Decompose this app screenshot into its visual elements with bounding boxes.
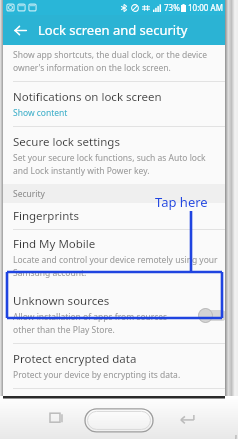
staticText: Allow installation of apps from sources: [13, 311, 168, 323]
staticText: Find My Mobile: [13, 236, 96, 252]
button[interactable]: Notifications on lock screen: [0, 82, 238, 126]
staticText: Protect your device by encrypting its da…: [13, 369, 181, 381]
button[interactable]: Fingerprints: [0, 203, 238, 229]
staticText: and Lock instantly with Power key.: [13, 165, 150, 177]
staticText: Tap here: [155, 193, 208, 211]
staticText: Lock screen and security: [38, 21, 188, 39]
staticText: Locate and control your device remotely …: [13, 254, 218, 266]
staticText: Set your secure lock functions, such as …: [13, 152, 206, 164]
button[interactable]: Secure lock settings: [0, 127, 238, 184]
button[interactable]: Unknown sources: [0, 285, 238, 343]
staticText: owner's information on the lock screen.: [13, 62, 171, 74]
button[interactable]: Find My Mobile: [0, 230, 238, 285]
staticText: Fingerprints: [13, 208, 79, 224]
staticText: Notifications on lock screen: [13, 89, 162, 105]
staticText: Unknown sources: [13, 293, 110, 309]
button[interactable]: Other security settings: [0, 389, 238, 396]
button[interactable]: Show app shortcuts, the dual clock, or t…: [0, 45, 238, 81]
staticText: 10:00 AM: [188, 2, 223, 13]
staticText: Samsung account.: [13, 267, 87, 279]
button[interactable]: Unknown sources toggle: [198, 307, 228, 323]
staticText: Show app shortcuts, the dual clock, or t…: [13, 49, 208, 61]
staticText: 73%: [164, 2, 180, 13]
staticText: Protect encrypted data: [13, 351, 137, 367]
button[interactable]: Back: [9, 19, 31, 41]
staticText: Show content: [13, 107, 68, 119]
staticText: other than the Play Store.: [13, 324, 115, 336]
staticText: Security: [13, 188, 45, 200]
button[interactable]: Protect encrypted data: [0, 344, 238, 388]
staticText: Secure lock settings: [13, 134, 120, 150]
